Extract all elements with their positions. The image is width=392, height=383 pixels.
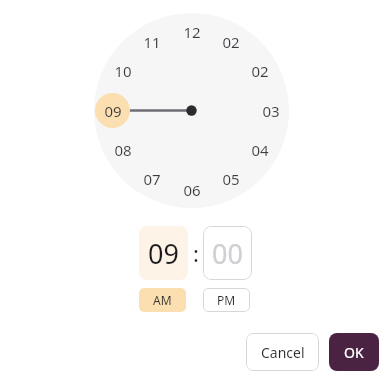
staticText: 07 <box>143 169 161 189</box>
button[interactable]: 05 <box>213 167 249 191</box>
staticText: Cancel <box>261 343 305 362</box>
staticText: 10 <box>114 61 132 81</box>
staticText: 00 <box>212 235 243 272</box>
button[interactable]: AM <box>139 288 186 312</box>
button[interactable]: 10 <box>105 59 141 83</box>
button[interactable]: OK <box>329 333 379 371</box>
button[interactable]: 09 <box>95 99 131 123</box>
staticText: OK <box>344 343 364 362</box>
staticText: 03 <box>262 101 280 121</box>
staticText: 09 <box>104 101 122 121</box>
button[interactable]: 04 <box>242 138 278 162</box>
staticText: 08 <box>114 140 132 160</box>
button[interactable]: 03 <box>253 99 289 123</box>
button[interactable]: 02 <box>213 30 249 54</box>
staticText: 04 <box>251 140 269 160</box>
button[interactable]: 07 <box>134 167 170 191</box>
staticText: 06 <box>183 180 201 200</box>
button[interactable]: 12 <box>174 20 210 44</box>
button[interactable]: 00 <box>203 226 252 280</box>
staticText: : <box>193 238 199 268</box>
staticText: AM <box>153 292 172 308</box>
staticText: 09 <box>148 235 179 272</box>
button[interactable]: 11 <box>134 30 170 54</box>
button[interactable]: PM <box>203 288 250 312</box>
button[interactable]: 06 <box>174 178 210 202</box>
button[interactable]: 02 <box>242 59 278 83</box>
staticText: 12 <box>183 22 201 42</box>
staticText: 02 <box>222 32 240 52</box>
button[interactable]: 08 <box>105 138 141 162</box>
staticText: 02 <box>251 61 269 81</box>
staticText: 05 <box>222 169 240 189</box>
button[interactable]: 09 <box>139 226 188 280</box>
button[interactable]: Cancel <box>246 333 319 371</box>
staticText: 11 <box>143 32 161 52</box>
staticText: PM <box>217 292 236 308</box>
